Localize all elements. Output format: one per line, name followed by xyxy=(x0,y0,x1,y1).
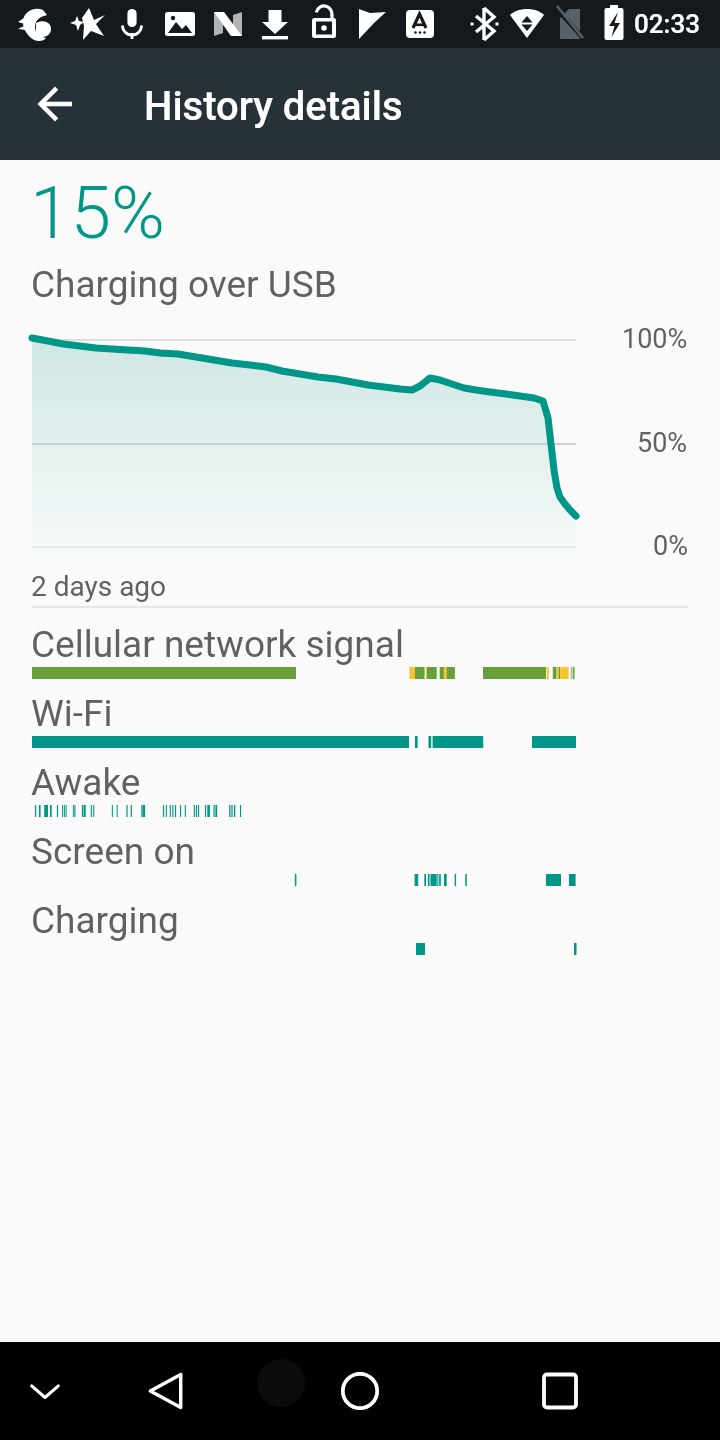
staticText: 2 days ago xyxy=(31,570,167,603)
staticText: 15% xyxy=(30,170,165,256)
staticText: 50% xyxy=(637,427,688,459)
staticText: Cellular network signal xyxy=(31,623,404,666)
staticText: 02:33 xyxy=(634,9,700,39)
button[interactable]: Recent apps xyxy=(520,1351,600,1431)
staticText: Charging over USB xyxy=(31,263,337,306)
staticText: Wi-Fi xyxy=(31,692,113,735)
button[interactable]: Hide keyboard xyxy=(10,1356,80,1426)
staticText: Awake xyxy=(31,761,141,804)
staticText: 0% xyxy=(653,530,688,562)
staticText: 100% xyxy=(622,323,688,355)
button[interactable]: Back xyxy=(126,1351,206,1431)
staticText: Charging xyxy=(31,899,179,942)
staticText: Screen on xyxy=(31,830,195,873)
staticText: History details xyxy=(144,83,403,130)
button[interactable]: Home xyxy=(316,1347,404,1435)
button[interactable]: Back xyxy=(16,64,96,144)
